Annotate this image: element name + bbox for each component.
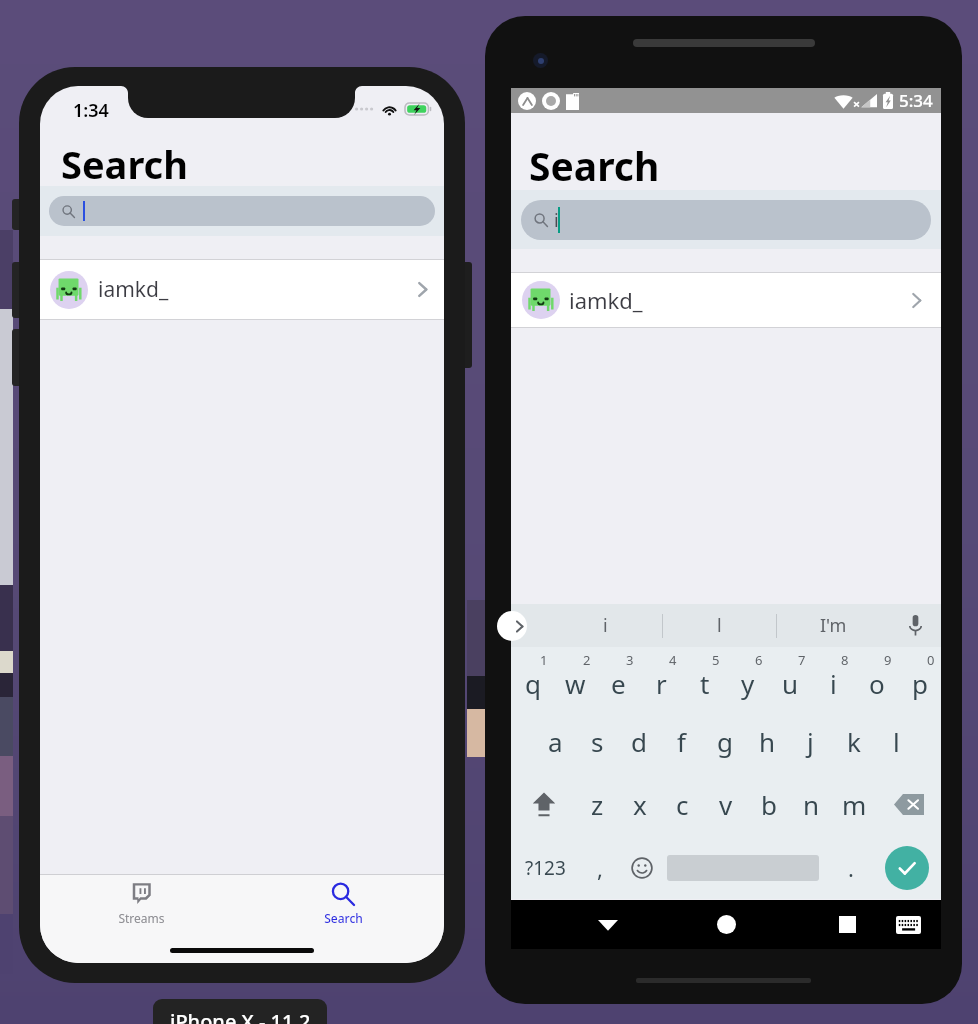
staticText: o [869,666,885,701]
staticText: i [830,666,837,701]
button[interactable]: i [548,604,662,647]
staticText: y [741,666,755,701]
staticText: r [656,666,667,701]
staticText: . [848,853,854,883]
staticText: Search [324,910,363,926]
staticText: l [893,724,900,759]
button[interactable]: m [833,773,876,836]
button[interactable]: 6 [726,647,769,710]
staticText: h [759,724,776,759]
button[interactable]: f [660,710,703,773]
staticText: s [591,724,604,759]
staticText: b [761,787,777,822]
button[interactable]: . [829,836,873,899]
staticText: u [782,666,799,701]
staticText: n [803,787,820,822]
button[interactable]: 9 [855,647,898,710]
button[interactable]: z [576,773,618,836]
staticText: iamkd_ [569,285,643,315]
button[interactable]: Voice input [890,604,941,647]
staticText: e [611,666,626,701]
button[interactable]: 7 [769,647,812,710]
button[interactable]: Enter [873,836,941,899]
staticText: Search [529,139,660,192]
button[interactable]: 5 [683,647,726,710]
staticText: i [603,613,608,638]
staticText: I'm [820,613,847,638]
staticText: v [719,787,733,822]
staticText: k [847,724,861,759]
staticText: x [633,787,647,822]
button[interactable]: ?123 [511,836,579,899]
staticText: q [525,666,541,701]
staticText: c [676,787,689,822]
button[interactable]: I'm [777,604,890,647]
button[interactable]: 4 [640,647,683,710]
staticText: l [717,613,722,638]
button[interactable] [49,196,435,226]
staticText: 7 [798,651,806,669]
button[interactable]: g [703,710,746,773]
staticText: Search [61,138,188,190]
button[interactable]: d [618,710,660,773]
staticText: j [807,724,814,759]
staticText: , [597,853,603,883]
button[interactable]: Home [701,900,751,949]
button[interactable]: Emoji [621,836,663,899]
staticText: 6 [755,651,763,669]
button[interactable]: Switch keyboard [881,900,935,949]
button[interactable]: l [663,604,776,647]
staticText: 8 [841,651,849,669]
button[interactable]: Back [583,900,633,949]
button[interactable]: i [521,200,931,240]
staticText: 5 [712,651,720,669]
staticText: g [717,724,733,759]
button[interactable]: s [576,710,618,773]
button[interactable]: Expand suggestions [497,611,527,641]
button[interactable]: 2 [554,647,597,710]
button[interactable]: a [534,710,576,773]
staticText: iPhone X - 11.2 [170,1008,311,1024]
button[interactable]: Shift [511,773,576,836]
button[interactable]: 0 [898,647,941,710]
staticText: m [842,787,867,822]
button[interactable]: Recents [822,900,872,949]
button[interactable]: n [790,773,833,836]
button[interactable]: Backspace [876,773,941,836]
button[interactable]: iamkd_ [40,259,444,320]
button[interactable]: x [618,773,661,836]
button[interactable]: 3 [597,647,640,710]
staticText: i [554,208,559,233]
button[interactable]: v [704,773,747,836]
button[interactable]: , [579,836,621,899]
button[interactable]: 8 [812,647,855,710]
staticText: 4 [669,651,677,669]
button[interactable]: h [746,710,789,773]
staticText: iamkd_ [98,275,169,304]
button[interactable]: l [875,710,918,773]
staticText: ?123 [525,855,566,881]
button[interactable]: Space [663,836,829,899]
staticText: d [631,724,647,759]
staticText: 1 [540,651,548,669]
staticText: Streams [118,910,165,926]
staticText: 2 [583,651,591,669]
staticText: a [548,724,563,759]
button[interactable]: b [747,773,790,836]
staticText: f [677,724,686,759]
staticText: 9 [884,651,892,669]
staticText: 0 [927,651,935,669]
staticText: 1:34 [73,98,109,123]
staticText: 3 [626,651,634,669]
button[interactable]: iamkd_ [511,272,941,328]
button[interactable]: Streams [40,875,242,933]
button[interactable]: c [661,773,704,836]
staticText: w [565,666,586,701]
button[interactable]: j [789,710,832,773]
button[interactable]: k [832,710,875,773]
staticText: p [912,666,928,701]
button[interactable]: Search [242,875,444,933]
staticText: t [700,666,710,701]
staticText: z [591,787,604,822]
button[interactable]: 1 [511,647,554,710]
